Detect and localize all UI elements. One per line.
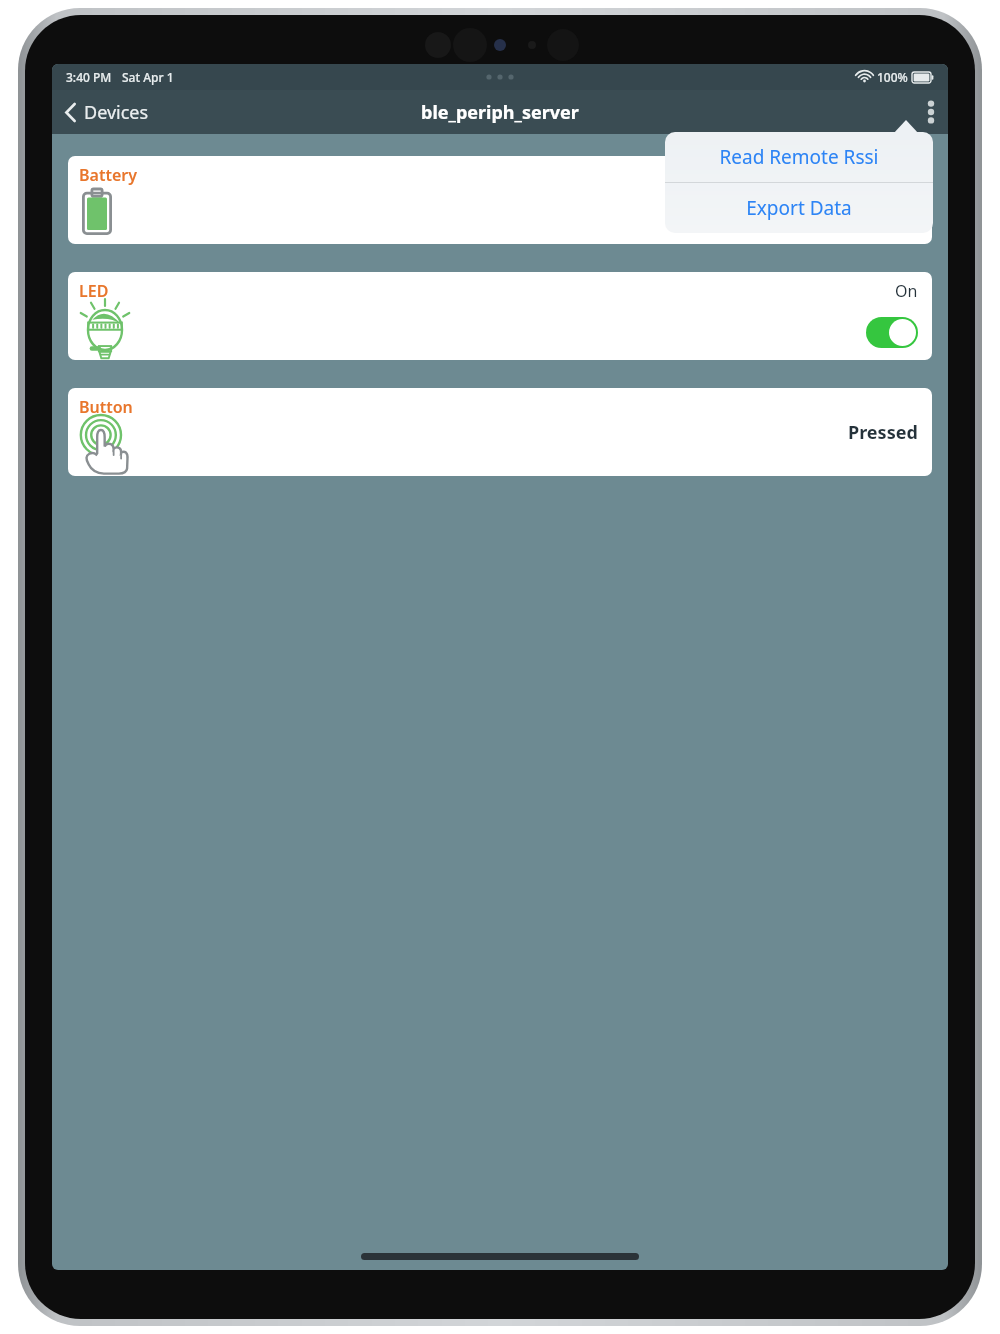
staticText: 3:40 PM [66,69,112,85]
button[interactable]: Button [68,388,932,476]
staticText: Pressed [848,420,918,445]
staticText: Sat Apr 1 [122,69,174,85]
button[interactable]: LED [68,272,932,360]
staticText: ble_periph_server [421,100,579,125]
button[interactable]: LED toggle, on [866,317,918,348]
staticText: On [895,280,918,302]
staticText: Battery [79,164,137,186]
staticText: Read Remote Rssi [719,144,879,170]
button[interactable]: Export Data [665,183,933,233]
staticText: Button [79,396,133,418]
button[interactable]: Battery [68,156,932,244]
button[interactable]: Read Remote Rssi [665,132,933,182]
staticText: Export Data [746,195,852,221]
staticText: Devices [84,100,149,125]
staticText: LED [79,280,109,302]
button[interactable]: More options [914,90,948,134]
staticText: 100% [877,69,908,85]
button[interactable]: Devices [52,94,161,131]
